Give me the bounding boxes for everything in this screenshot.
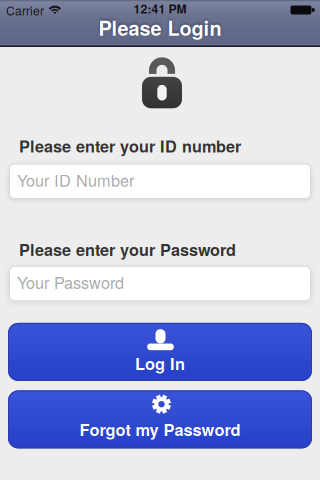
- staticText: Please enter your ID number: [19, 134, 241, 157]
- staticText: Forgot my Password: [79, 417, 240, 441]
- textField[interactable]: Your ID Number: [17, 170, 311, 193]
- staticText: Please Login: [98, 13, 221, 42]
- staticText: Your ID Number: [17, 170, 134, 193]
- staticText: Your ID Number: [17, 168, 134, 191]
- textField[interactable]: Your Password: [17, 272, 311, 295]
- button[interactable]: Forgot my Password: [8, 390, 312, 448]
- staticText: Your Password: [17, 272, 124, 295]
- staticText: 12:41 PM: [133, 0, 186, 17]
- staticText: Your Password: [17, 270, 124, 294]
- staticText: Carrier: [6, 1, 44, 19]
- staticText: Log In: [135, 352, 185, 375]
- staticText: Please enter your Password: [19, 238, 236, 261]
- button[interactable]: Log In: [8, 323, 312, 381]
